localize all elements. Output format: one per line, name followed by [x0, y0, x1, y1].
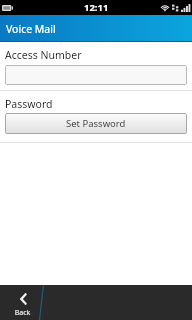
staticText: Set Password: [66, 117, 126, 130]
button[interactable]: Set Password: [5, 113, 187, 134]
staticText: 12:11: [84, 1, 109, 14]
staticText: Access Number: [5, 48, 82, 62]
staticText: Password: [5, 97, 53, 111]
button[interactable]: Back: [0, 285, 43, 320]
staticText: Voice Mail: [6, 22, 56, 36]
button[interactable]: [5, 65, 187, 85]
staticText: Back: [1, 308, 44, 318]
